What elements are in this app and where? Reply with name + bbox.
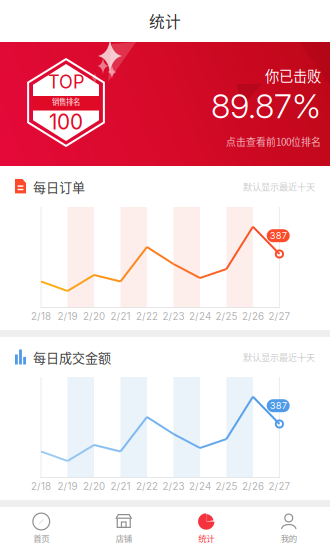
staticText: 销售排名 xyxy=(52,96,80,107)
staticText: 2/18 xyxy=(31,481,51,492)
button[interactable]: 我的 xyxy=(247,507,330,550)
staticText: 2/21 xyxy=(110,481,130,492)
staticText: 100 xyxy=(49,109,83,134)
staticText: 2/26 xyxy=(242,311,264,322)
staticText: 2/25 xyxy=(215,481,237,492)
staticText: 2/26 xyxy=(242,481,264,492)
staticText: 每日订单 xyxy=(33,177,85,196)
staticText: 统计 xyxy=(198,532,214,544)
button[interactable]: 首页 xyxy=(0,507,82,550)
staticText: TOP xyxy=(48,71,84,93)
staticText: 2/22 xyxy=(136,311,158,322)
staticText: 2/19 xyxy=(57,311,77,322)
button[interactable]: 统计 xyxy=(165,507,247,550)
staticText: 2/21 xyxy=(110,311,130,322)
staticText: 2/24 xyxy=(189,311,211,322)
staticText: 2/23 xyxy=(162,311,184,322)
staticText: 你已击败 xyxy=(265,65,321,86)
staticText: 店铺 xyxy=(116,532,132,544)
staticText: 2/19 xyxy=(57,481,77,492)
staticText: 2/25 xyxy=(215,311,237,322)
staticText: 点击查看前100位排名 xyxy=(226,134,321,149)
staticText: 默认显示最近十天 xyxy=(243,180,315,193)
staticText: 387 xyxy=(270,400,287,411)
staticText: 2/20 xyxy=(83,481,105,492)
staticText: 默认显示最近十天 xyxy=(243,350,315,364)
button[interactable]: 店铺 xyxy=(82,507,165,550)
button[interactable]: 你已击败 xyxy=(141,67,321,148)
staticText: 每日成交金额 xyxy=(33,347,111,366)
staticText: 2/18 xyxy=(31,311,51,322)
staticText: 2/22 xyxy=(136,481,158,492)
staticText: 89.87% xyxy=(211,86,321,126)
staticText: 2/24 xyxy=(189,481,211,492)
staticText: 2/20 xyxy=(83,311,105,322)
staticText: 2/27 xyxy=(268,481,290,492)
staticText: 我的 xyxy=(281,532,297,544)
staticText: 387 xyxy=(270,230,287,241)
staticText: 2/27 xyxy=(268,311,290,322)
staticText: 2/23 xyxy=(162,481,184,492)
staticText: 统计 xyxy=(149,10,181,32)
staticText: 首页 xyxy=(33,532,49,544)
